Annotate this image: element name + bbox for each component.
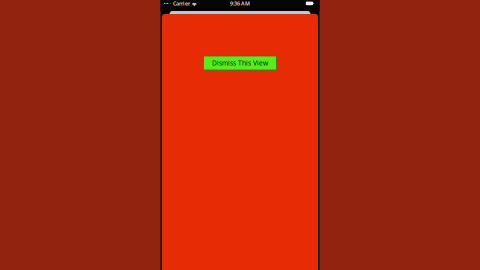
staticText: Dismiss This View	[212, 59, 268, 67]
button[interactable]: Dismiss This View	[203, 56, 276, 70]
staticText: 9:36 AM	[230, 0, 250, 7]
staticText: Carrier	[173, 0, 190, 7]
